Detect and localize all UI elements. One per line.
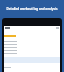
staticText: Detailed workout log and analysis [2,7,62,11]
